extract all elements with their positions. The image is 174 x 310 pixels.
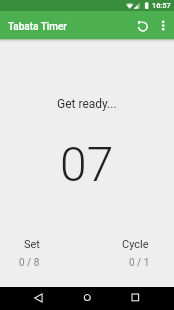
staticText: Set xyxy=(24,238,40,251)
staticText: 16:57 xyxy=(152,1,171,10)
staticText: Cycle xyxy=(122,238,149,251)
button[interactable]: Recent apps xyxy=(119,287,167,310)
button[interactable]: Back xyxy=(8,287,56,310)
staticText: 0 / 1 xyxy=(129,257,150,269)
button[interactable]: More options xyxy=(152,15,174,37)
button[interactable]: Reset xyxy=(131,15,154,38)
staticText: 0 / 8 xyxy=(19,257,40,269)
staticText: Get ready... xyxy=(57,97,117,111)
button[interactable]: Home xyxy=(63,287,111,310)
staticText: 07 xyxy=(60,136,114,192)
staticText: Tabata Timer xyxy=(8,21,67,33)
